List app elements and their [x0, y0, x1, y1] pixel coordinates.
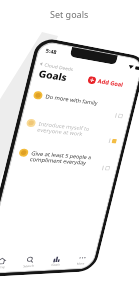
- button[interactable]: Give at least 5 people a compliment ever…: [4, 109, 108, 139]
- staticText: Give at least 5 people a compliment ever…: [20, 111, 79, 125]
- button[interactable]: Do more with family: [4, 51, 108, 81]
- staticText: Do more with family: [20, 53, 72, 60]
- staticText: Set goals: [50, 8, 89, 20]
- button[interactable]: More: [82, 218, 108, 236]
- button[interactable]: Introduce myself to everyone at work: [4, 79, 108, 109]
- button[interactable]: Add Goal: [54, 28, 95, 40]
- staticText: Introduce myself to everyone at work: [20, 81, 70, 95]
